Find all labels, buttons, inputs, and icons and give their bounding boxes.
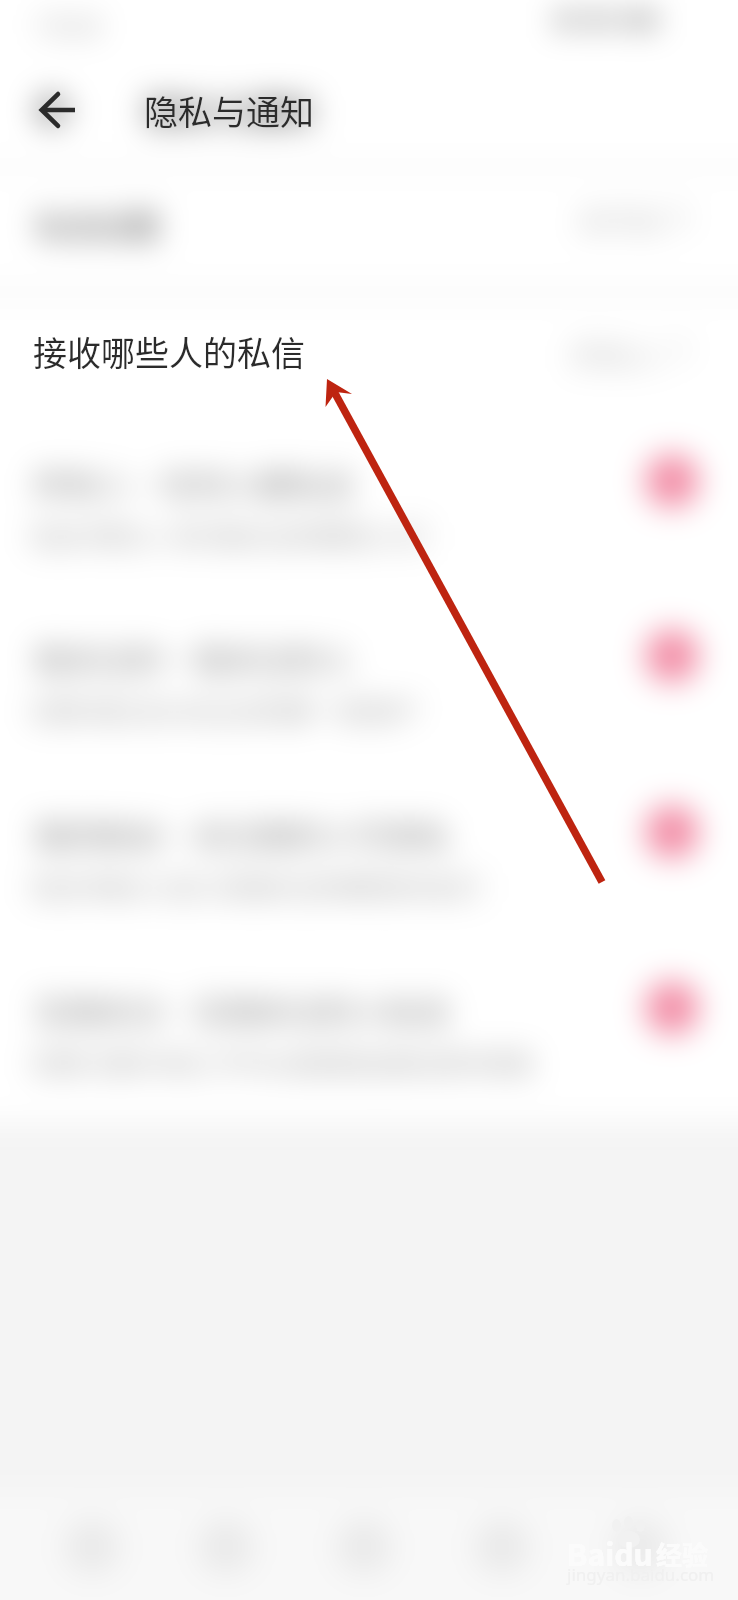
button[interactable]: Post xyxy=(304,1494,424,1600)
button[interactable] xyxy=(0,922,738,1097)
staticText: 互相关注·互相关注的人私信 xyxy=(34,987,451,1033)
button[interactable] xyxy=(0,746,738,921)
button[interactable]: Discover xyxy=(166,1494,286,1600)
button[interactable] xyxy=(0,395,738,570)
button[interactable]: Back xyxy=(22,74,94,146)
button[interactable]: 接收哪些人的私信 xyxy=(0,296,738,394)
staticText: 私信设置 xyxy=(36,202,160,247)
staticText: 包含 陌生人 和 我关注的那些人们 xyxy=(30,516,427,555)
button[interactable] xyxy=(0,170,738,288)
button[interactable] xyxy=(0,570,738,745)
staticText: 隐私与通知 xyxy=(144,86,314,135)
staticText: 所有人·任何人都私信 xyxy=(34,460,355,506)
staticText: 仅限 我主动 关注过的那一些用户 xyxy=(30,691,421,730)
button[interactable]: Profile xyxy=(580,1494,700,1600)
staticText: 我关注的·我关注的人 xyxy=(34,635,355,681)
button[interactable]: Home xyxy=(32,1494,152,1600)
staticText: 隐私与通知 xyxy=(144,86,314,135)
staticText: 我的粉丝·关注我的人可发私 xyxy=(34,811,451,857)
staticText: 接收哪些人的私信 xyxy=(33,327,305,376)
button[interactable]: Messages xyxy=(442,1494,562,1600)
